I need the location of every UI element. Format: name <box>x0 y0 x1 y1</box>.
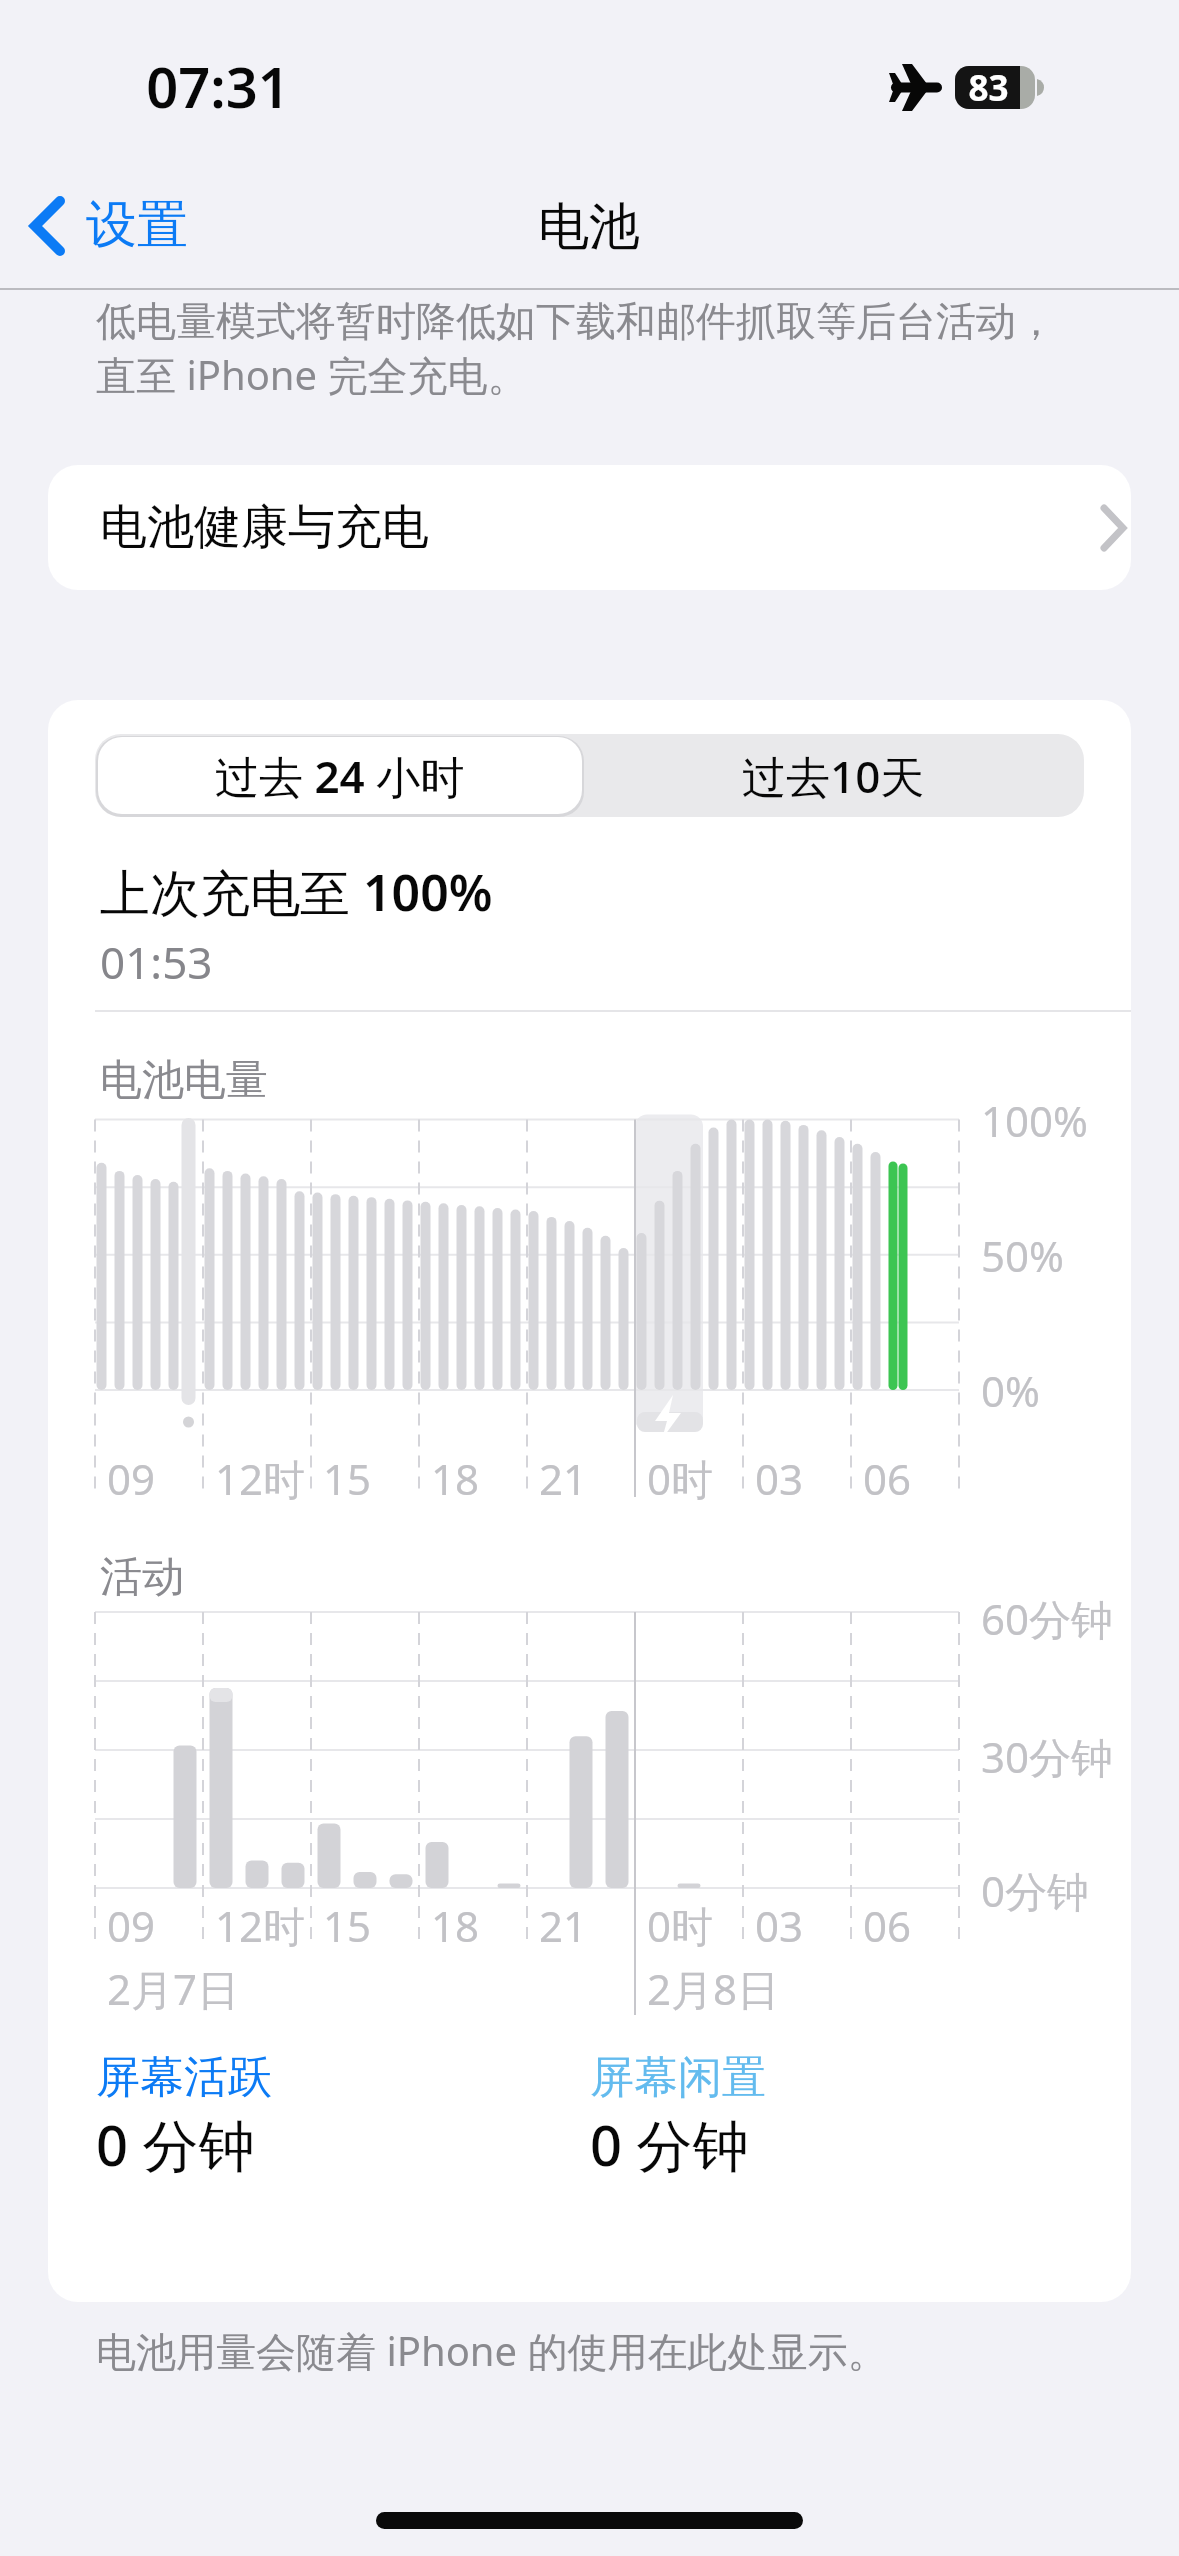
staticText: 电池健康与充电 <box>100 498 429 557</box>
staticText: 15 <box>323 1450 372 1507</box>
staticText: 过去 24 小时 <box>215 746 465 806</box>
staticText: 设置 <box>86 193 188 257</box>
staticText: 100% <box>981 1092 1088 1149</box>
staticText: 0分钟 <box>981 1862 1090 1919</box>
staticText: 03 <box>755 1897 804 1954</box>
staticText: 活动 <box>100 1551 184 1604</box>
staticText: 12时 <box>215 1897 306 1954</box>
staticText: 0时 <box>647 1897 714 1954</box>
staticText: 60分钟 <box>981 1590 1114 1647</box>
staticText: 0 分钟 <box>590 2106 749 2182</box>
staticText: 18 <box>431 1897 480 1954</box>
staticText: 21 <box>539 1897 588 1954</box>
button[interactable]: 设置 <box>0 170 260 280</box>
button[interactable]: 过去10天 <box>582 737 1084 814</box>
button[interactable]: 电池健康与充电 <box>48 465 1131 590</box>
staticText: 电池用量会随着 iPhone 的使用在此处显示。 <box>96 2323 888 2378</box>
staticText: 电池电量 <box>100 1054 268 1107</box>
staticText: 12时 <box>215 1450 306 1507</box>
staticText: 低电量模式将暂时降低如下载和邮件抓取等后台活动， 直至 iPhone 完全充电。 <box>96 296 1056 402</box>
staticText: 0% <box>981 1362 1040 1419</box>
staticText: 30分钟 <box>981 1728 1114 1785</box>
staticText: 21 <box>539 1450 588 1507</box>
staticText: 2月8日 <box>647 1960 780 2017</box>
button[interactable]: 过去 24 小时 <box>98 737 582 814</box>
staticText: 07:31 <box>146 48 290 124</box>
staticText: 83 <box>968 64 1009 112</box>
staticText: 2月7日 <box>107 1960 240 2017</box>
staticText: 06 <box>863 1897 912 1954</box>
staticText: 屏幕闲置 <box>590 2050 766 2105</box>
staticText: 过去10天 <box>742 746 925 806</box>
staticText: 09 <box>107 1450 156 1507</box>
staticText: 50% <box>981 1227 1064 1284</box>
staticText: 0时 <box>647 1450 714 1507</box>
staticText: 15 <box>323 1897 372 1954</box>
staticText: 06 <box>863 1450 912 1507</box>
staticText: 0 分钟 <box>96 2106 255 2182</box>
staticText: 09 <box>107 1897 156 1954</box>
staticText: 18 <box>431 1450 480 1507</box>
staticText: 上次充电至 100% <box>100 858 493 926</box>
staticText: 屏幕活跃 <box>96 2050 272 2105</box>
staticText: 01:53 <box>100 932 213 992</box>
staticText: 电池 <box>538 195 640 259</box>
staticText: 03 <box>755 1450 804 1507</box>
